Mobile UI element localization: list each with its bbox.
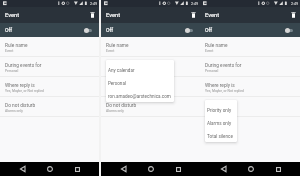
staticText: Rule name	[205, 43, 228, 49]
staticText: During events for	[106, 63, 143, 69]
staticText: Yes, Maybe, or Not replied	[205, 89, 244, 93]
button[interactable]: Off	[0, 23, 99, 37]
staticText: Off	[5, 27, 13, 33]
button[interactable]: Personal	[106, 77, 174, 90]
button[interactable]: Where reply is	[200, 77, 300, 97]
staticText: Do not disturb	[205, 103, 236, 109]
staticText: Personal	[106, 69, 120, 73]
button[interactable]: During events for	[200, 57, 300, 77]
button[interactable]: Delete	[87, 10, 98, 21]
button[interactable]: Delete	[188, 10, 199, 21]
staticText: Total silence	[207, 134, 233, 139]
staticText: During events for	[205, 63, 242, 69]
staticText: Do not disturb	[5, 103, 36, 109]
button[interactable]: Recents	[66, 162, 88, 176]
staticText: 2:49	[191, 2, 198, 6]
staticText: Event	[205, 12, 220, 19]
button[interactable]: Recents	[267, 162, 289, 176]
button[interactable]: Do not disturb	[101, 97, 200, 117]
staticText: Alarms only	[5, 109, 23, 113]
staticText: Where reply is	[205, 83, 235, 89]
staticText: Personal	[5, 69, 19, 73]
staticText: ron.amadeo@arstechnica.com	[108, 94, 171, 99]
staticText: Event	[5, 49, 14, 53]
button[interactable]: Rule name	[0, 37, 99, 57]
staticText: Rule name	[5, 43, 28, 49]
button[interactable]: Rule name	[200, 37, 300, 57]
button[interactable]: Rule name	[101, 37, 200, 57]
button[interactable]: Recents	[167, 162, 189, 176]
staticText: Personal	[108, 81, 127, 86]
button[interactable]: Back	[112, 162, 134, 176]
button[interactable]: Delete	[288, 10, 299, 21]
button[interactable]: Do not disturb	[0, 97, 99, 117]
staticText: Any calendar	[108, 68, 135, 73]
button[interactable]: Total silence	[205, 130, 237, 142]
staticText: Alarms only	[207, 121, 232, 126]
button[interactable]: Off	[200, 23, 300, 37]
button[interactable]: Home	[234, 162, 267, 176]
button[interactable]: Alarms only	[205, 117, 237, 130]
staticText: Yes, Maybe, or Not replied	[5, 89, 44, 93]
staticText: Alarms only	[106, 109, 124, 113]
button[interactable]: Any calendar	[106, 64, 174, 77]
staticText: Event	[106, 12, 121, 19]
button[interactable]: Home	[33, 162, 66, 176]
button[interactable]: Back	[212, 162, 234, 176]
staticText: During events for	[5, 63, 42, 69]
staticText: Rule name	[106, 43, 129, 49]
button[interactable]: Where reply is	[101, 77, 200, 97]
button[interactable]: During events for	[101, 57, 200, 77]
staticText: Where reply is	[106, 83, 136, 89]
staticText: 2:49	[90, 2, 97, 6]
staticText: Where reply is	[5, 83, 35, 89]
staticText: Priority only	[207, 108, 232, 113]
staticText: Event	[205, 49, 214, 53]
button[interactable]: ron.amadeo@arstechnica.com	[106, 90, 174, 102]
staticText: Off	[106, 27, 114, 33]
button[interactable]: Do not disturb	[200, 97, 300, 117]
staticText: Personal	[205, 69, 219, 73]
button[interactable]: Where reply is	[0, 77, 99, 97]
staticText: Alarms only	[205, 109, 223, 113]
button[interactable]: Home	[134, 162, 167, 176]
button[interactable]: Off	[101, 23, 200, 37]
staticText: Do not disturb	[106, 103, 137, 109]
staticText: Event	[106, 49, 115, 53]
button[interactable]: Back	[11, 162, 33, 176]
button[interactable]: Priority only	[205, 104, 237, 117]
staticText: Off	[205, 27, 213, 33]
staticText: 2:49	[291, 2, 298, 6]
button[interactable]: During events for	[0, 57, 99, 77]
staticText: Event	[5, 12, 20, 19]
